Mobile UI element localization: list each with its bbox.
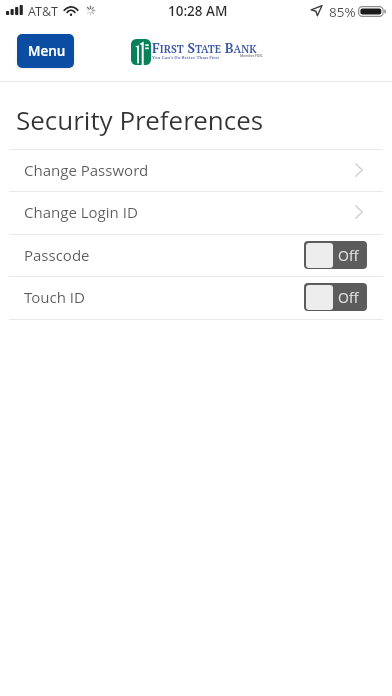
staticText: Member FDIC (240, 53, 263, 58)
staticText: Security Preferences (16, 102, 264, 137)
staticText: Change Login ID (24, 202, 138, 222)
staticText: 85% (329, 3, 356, 21)
staticText: AT&T (28, 3, 58, 20)
staticText: FIRST STATE BANK (152, 39, 257, 57)
button[interactable]: Passcode (0, 234, 392, 276)
button[interactable]: Touch ID (0, 276, 392, 318)
staticText: Menu (28, 42, 66, 60)
other: Open Change Password (355, 163, 363, 177)
button[interactable]: Touch ID toggle, Off (304, 283, 367, 311)
staticText: Off (338, 288, 359, 307)
other: Open Change Login ID (355, 205, 363, 219)
button[interactable]: Change Login ID (0, 191, 392, 233)
staticText: Off (338, 246, 359, 265)
button[interactable]: Menu (17, 34, 74, 68)
button[interactable]: Passcode toggle, Off (304, 241, 367, 269)
staticText: 10:28 AM (168, 2, 228, 20)
staticText: Passcode (24, 245, 90, 265)
other: First State Bank (131, 39, 151, 65)
staticText: Change Password (24, 160, 149, 180)
staticText: You Can't Do Better Than First (152, 54, 220, 60)
staticText: Touch ID (24, 287, 85, 307)
button[interactable]: Change Password (0, 149, 392, 191)
